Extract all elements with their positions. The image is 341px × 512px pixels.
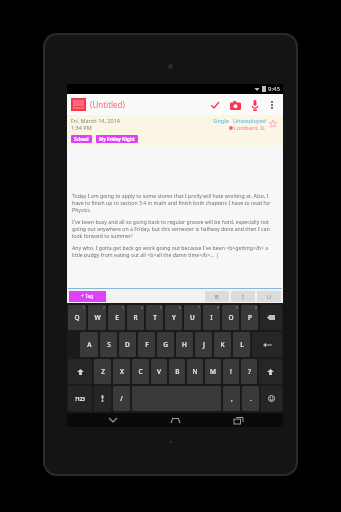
button[interactable]: N xyxy=(187,359,203,384)
staticText: P xyxy=(248,313,252,322)
button[interactable]: B xyxy=(169,359,185,384)
staticText: 6 xyxy=(179,306,181,310)
staticText: 4 xyxy=(141,306,143,310)
button[interactable]: Camera xyxy=(225,95,245,115)
staticText: (Untitled) xyxy=(90,99,125,110)
staticText: Lombard, IL xyxy=(234,124,266,131)
button[interactable]: My Friday Night xyxy=(96,135,138,143)
button[interactable]: Home xyxy=(158,413,192,427)
staticText: 9:45 xyxy=(268,85,280,93)
button[interactable]: F xyxy=(138,332,155,357)
staticText: R xyxy=(133,313,138,322)
staticText: U xyxy=(190,313,195,322)
staticText: T xyxy=(153,313,157,322)
staticText: B xyxy=(215,293,219,300)
button[interactable]: / xyxy=(113,386,130,411)
button[interactable]: Recent apps xyxy=(221,413,255,427)
button[interactable]: Emoji xyxy=(261,386,282,411)
button[interactable]: 0 xyxy=(241,305,258,330)
button[interactable]: + Tag xyxy=(69,291,106,302)
staticText: L xyxy=(240,340,244,349)
button[interactable]: 3 xyxy=(108,305,125,330)
staticText: J xyxy=(203,340,205,349)
staticText: O xyxy=(228,313,234,322)
staticText: 2 xyxy=(103,306,105,310)
button[interactable]: K xyxy=(214,332,231,357)
staticText: N xyxy=(192,367,198,376)
staticText: 1 xyxy=(83,306,85,310)
button[interactable]: ! xyxy=(223,359,239,384)
staticText: 5 xyxy=(160,306,162,310)
staticText: C xyxy=(138,367,143,376)
button[interactable]: Done xyxy=(205,95,225,115)
button[interactable]: Voice xyxy=(245,95,265,115)
staticText: U xyxy=(267,293,272,300)
button[interactable]: 2 xyxy=(88,305,106,330)
button[interactable]: Z xyxy=(94,359,111,384)
staticText: 3 xyxy=(122,306,124,310)
button[interactable]: S xyxy=(100,332,117,357)
staticText: , xyxy=(231,394,233,403)
button[interactable]: Note color xyxy=(71,98,86,111)
button[interactable]: A xyxy=(80,332,98,357)
staticText: My Friday Night xyxy=(99,136,135,142)
staticText: . xyxy=(250,394,252,403)
button[interactable]: B xyxy=(205,291,229,302)
button[interactable]: D xyxy=(119,332,136,357)
button[interactable]: V xyxy=(151,359,167,384)
staticText: ? xyxy=(248,367,251,376)
staticText: X xyxy=(120,367,124,376)
button[interactable]: 1 xyxy=(68,305,86,330)
button[interactable]: Backspace xyxy=(260,305,282,330)
staticText: G xyxy=(163,340,168,349)
staticText: A xyxy=(87,340,92,349)
button[interactable]: 4 xyxy=(127,305,144,330)
staticText: I've been busy and all so going back to … xyxy=(72,218,278,239)
button[interactable]: 5 xyxy=(146,305,163,330)
staticText: / xyxy=(120,394,123,403)
staticText: K xyxy=(220,340,225,349)
staticText: D xyxy=(125,340,130,349)
button[interactable]: Shift xyxy=(68,359,92,384)
button[interactable]: H xyxy=(176,332,193,357)
button[interactable]: 9 xyxy=(222,305,239,330)
button[interactable]: J xyxy=(195,332,212,357)
staticText: Q xyxy=(74,313,80,322)
staticText: M xyxy=(210,367,216,376)
button[interactable]: M xyxy=(205,359,221,384)
button[interactable]: L xyxy=(233,332,250,357)
staticText: 9 xyxy=(236,306,238,310)
staticText: B xyxy=(175,367,180,376)
button[interactable]: 7 xyxy=(184,305,201,330)
staticText: E xyxy=(115,313,119,322)
button[interactable]: Today I am going to apply to some stores… xyxy=(68,145,282,289)
staticText: + Tag xyxy=(81,293,94,300)
button[interactable]: C xyxy=(132,359,149,384)
button[interactable]: Back xyxy=(96,413,130,427)
staticText: F xyxy=(145,340,149,349)
staticText: Single xyxy=(213,117,229,124)
button[interactable]: G xyxy=(157,332,174,357)
button[interactable]: ? xyxy=(241,359,257,384)
button[interactable]: U xyxy=(257,291,281,302)
button[interactable]: Shift xyxy=(259,359,282,384)
staticText: 0 xyxy=(255,306,257,310)
button[interactable]: Voice input xyxy=(94,386,111,411)
button[interactable]: Favorite xyxy=(267,118,279,130)
button[interactable]: School xyxy=(71,135,92,143)
button[interactable]: Symbols xyxy=(68,386,92,411)
button[interactable]: More options xyxy=(265,98,279,112)
button[interactable]: , xyxy=(223,386,240,411)
button[interactable]: 6 xyxy=(165,305,182,330)
button[interactable]: I xyxy=(231,291,255,302)
staticText: Today I am going to apply to some stores… xyxy=(72,192,278,213)
button[interactable]: Enter xyxy=(252,332,282,357)
staticText: I xyxy=(242,293,244,300)
button[interactable]: X xyxy=(113,359,130,384)
button[interactable]: . xyxy=(242,386,259,411)
button[interactable]: 8 xyxy=(203,305,220,330)
staticText: School xyxy=(74,136,89,142)
staticText: Z xyxy=(101,367,105,376)
staticText: ! xyxy=(230,367,232,376)
